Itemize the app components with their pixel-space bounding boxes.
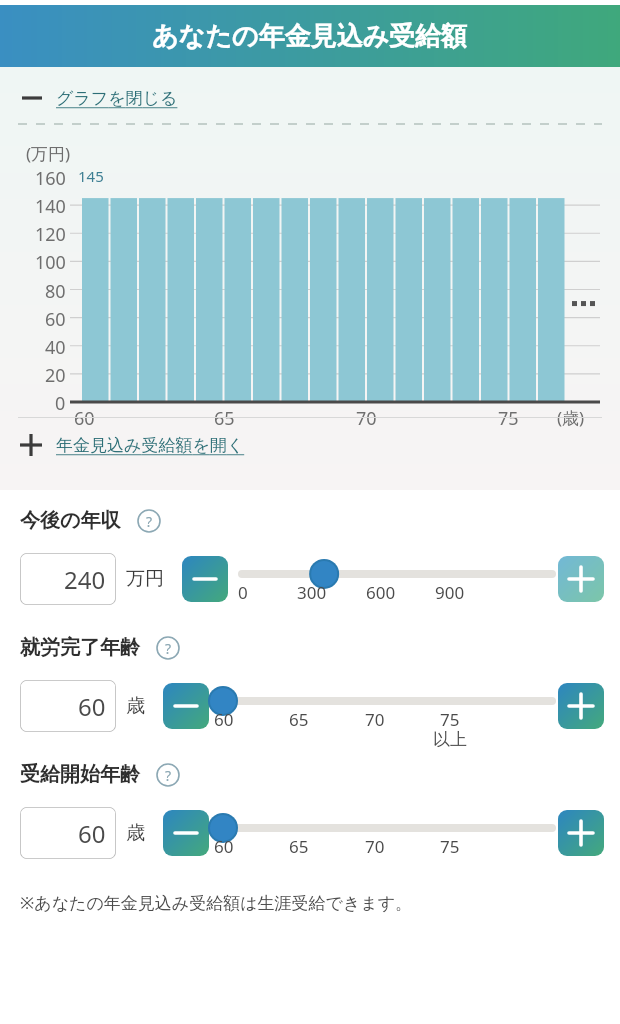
staticText: 60 — [45, 307, 66, 332]
staticText: 60 — [78, 690, 106, 723]
staticText: 60 — [214, 708, 234, 731]
staticText: 70 — [365, 708, 385, 731]
staticText: ? — [146, 512, 153, 531]
staticText: 0 — [238, 581, 248, 604]
staticText: 140 — [35, 194, 66, 219]
staticText: 900 — [435, 581, 465, 604]
staticText: 65 — [214, 406, 235, 431]
staticText: あなたの年金見込み受給額 — [152, 20, 468, 53]
staticText: 160 — [35, 166, 66, 191]
staticText: (万円) — [26, 142, 71, 165]
button[interactable]: 0 — [228, 547, 558, 611]
button[interactable]: 減らす — [163, 810, 209, 856]
staticText: 0 — [55, 391, 66, 416]
staticText: ? — [165, 639, 172, 658]
button[interactable]: 増やす — [558, 556, 604, 602]
staticText: (歳) — [557, 406, 585, 429]
staticText: 万円 — [126, 567, 164, 591]
staticText: 今後の年収 — [20, 508, 121, 533]
button[interactable]: 60 — [20, 807, 116, 859]
staticText: 受給開始年齢 — [20, 762, 140, 787]
staticText: 300 — [297, 581, 327, 604]
staticText: 年金見込み受給額を開く — [56, 435, 245, 456]
staticText: 歳 — [126, 694, 145, 718]
button[interactable]: 減らす — [163, 683, 209, 729]
button[interactable]: ヘルプ — [156, 636, 180, 660]
staticText: 歳 — [126, 821, 145, 845]
staticText: 100 — [35, 250, 66, 275]
staticText: 600 — [366, 581, 396, 604]
button[interactable]: ヘルプ — [156, 763, 180, 787]
button[interactable]: 60 — [20, 680, 116, 732]
staticText: 60 — [214, 835, 234, 858]
staticText: 75 — [440, 708, 460, 731]
staticText: 60 — [74, 406, 95, 431]
button[interactable]: 60 — [209, 674, 558, 738]
staticText: 120 — [35, 222, 66, 247]
staticText: 以上 — [433, 729, 467, 750]
staticText: 75 — [440, 835, 460, 858]
staticText: ? — [165, 766, 172, 785]
staticText: 70 — [365, 835, 385, 858]
staticText: ※あなたの年金見込み受給額は生涯受給できます。 — [20, 891, 413, 914]
staticText: グラフを閉じる — [56, 88, 178, 109]
staticText: 就労完了年齢 — [20, 635, 140, 660]
button[interactable]: 減らす — [182, 556, 228, 602]
staticText: 240 — [64, 563, 106, 596]
button[interactable]: グラフを閉じる — [0, 81, 620, 115]
button[interactable]: 増やす — [558, 683, 604, 729]
staticText: 40 — [45, 335, 66, 360]
staticText: 80 — [45, 279, 66, 304]
button[interactable]: 60 — [209, 801, 558, 865]
button[interactable]: ヘルプ — [137, 509, 161, 533]
staticText: 65 — [289, 835, 309, 858]
button[interactable]: 増やす — [558, 810, 604, 856]
staticText: 20 — [45, 363, 66, 388]
staticText: 145 — [78, 166, 104, 186]
staticText: 60 — [78, 817, 106, 850]
button[interactable]: 240 — [20, 553, 116, 605]
staticText: 75 — [498, 406, 519, 431]
staticText: 65 — [289, 708, 309, 731]
button[interactable]: 年金見込み受給額を開く — [0, 425, 620, 465]
staticText: 70 — [356, 406, 377, 431]
